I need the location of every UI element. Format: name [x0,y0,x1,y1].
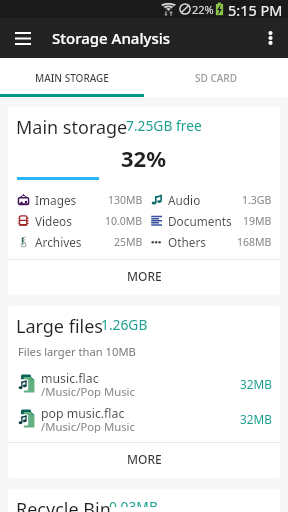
staticText: music.flac [41,370,99,387]
staticText: Audio [168,192,201,208]
staticText: /Music/Pop Music [41,419,135,433]
staticText: SD CARD [195,71,237,85]
staticText: 7.25GB free [126,116,202,135]
staticText: 25MB [114,235,143,249]
button[interactable]: Documents [144,210,280,231]
button[interactable]: More options [253,21,287,55]
button[interactable]: MORE [8,260,280,295]
staticText: /Music/Pop Music [41,384,135,398]
staticText: Recycle Bin [16,497,111,512]
staticText: MAIN STORAGE [35,71,109,85]
staticText: Archives [35,234,82,250]
staticText: Files larger than 10MB [18,344,136,359]
staticText: 19MB [243,214,272,228]
staticText: 1.3GB [242,193,272,207]
button[interactable]: MORE [8,443,280,478]
staticText: Videos [35,213,72,229]
staticText: MORE [127,451,162,467]
staticText: Images [35,192,77,208]
staticText: Others [168,234,206,250]
button[interactable]: Others [144,231,280,252]
staticText: 22% [192,2,214,17]
button[interactable]: pop music.flac [8,401,280,436]
staticText: Large files [16,314,103,339]
button[interactable]: Audio [144,189,280,210]
staticText: 5:15 PM [228,0,283,18]
staticText: 32MB [240,376,272,392]
staticText: pop music.flac [41,405,125,422]
staticText: 130MB [108,193,143,207]
staticText: Documents [168,213,232,229]
staticText: 10.0MB [105,214,143,228]
button[interactable]: Videos [8,210,144,231]
staticText: 168MB [237,235,272,249]
staticText: Main storage [16,115,128,140]
button[interactable]: Images [8,189,144,210]
staticText: MORE [127,268,162,284]
button[interactable]: Open navigation drawer [6,21,40,55]
staticText: 1.26GB [101,315,148,334]
button[interactable]: music.flac [8,366,280,401]
button[interactable]: MAIN STORAGE [0,58,144,97]
staticText: Storage Analysis [52,28,171,48]
staticText: 32% [8,143,166,173]
staticText: 0.03MB [109,497,158,507]
button[interactable]: SD CARD [144,58,288,97]
staticText: 32MB [240,411,272,427]
button[interactable]: Archives [8,231,144,252]
